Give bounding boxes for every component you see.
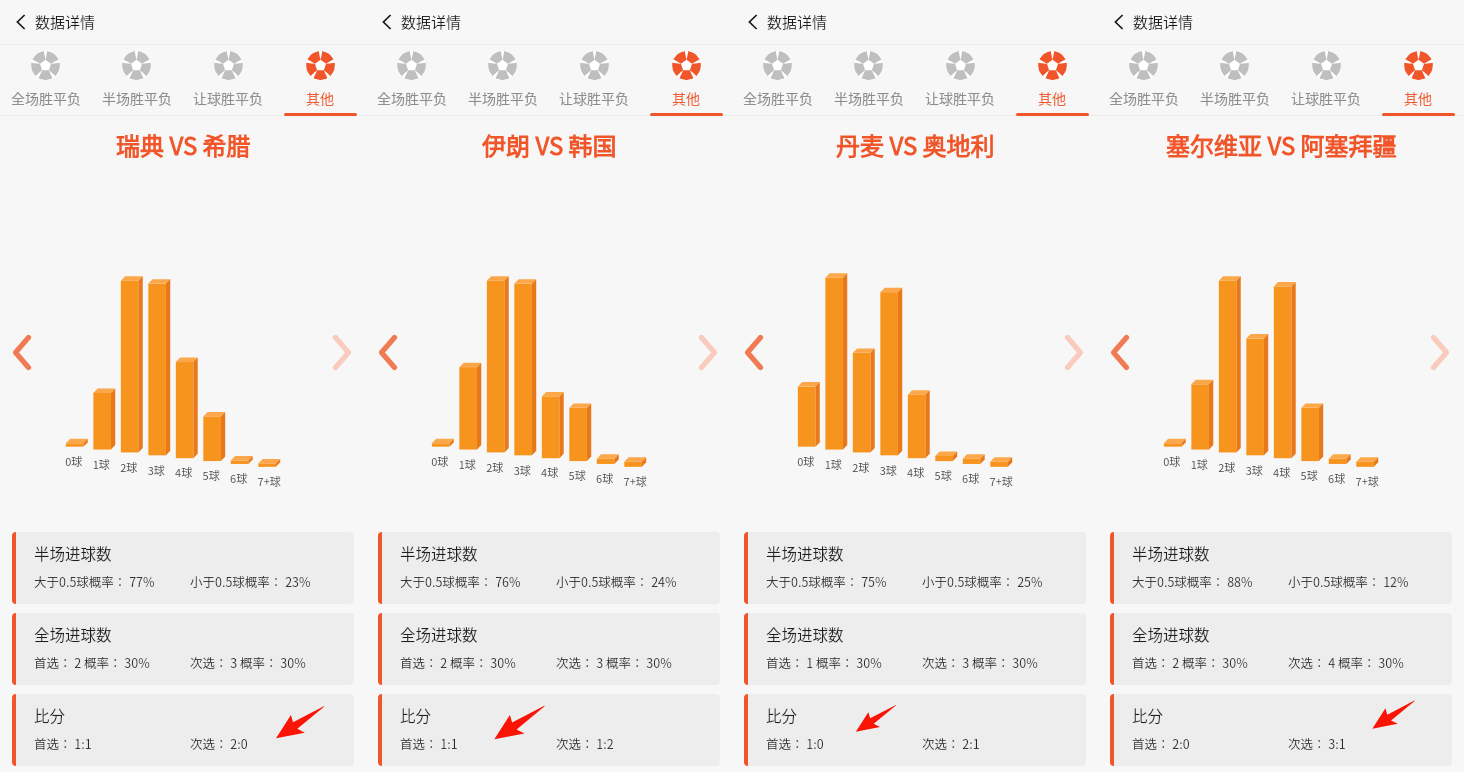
staticText: 次选： 3 概率： 30% (922, 653, 1038, 671)
button[interactable]: 半场胜平负 (823, 45, 914, 116)
button[interactable]: Next match (699, 335, 717, 370)
staticText: 半场胜平负 (1200, 88, 1270, 108)
button[interactable]: 比分 (12, 694, 354, 766)
staticText: 首选： 2 概率： 30% (34, 653, 150, 671)
staticText: 首选： 2:0 (1132, 734, 1190, 752)
button[interactable]: 半场进球数 (744, 532, 1086, 604)
button[interactable]: 全场进球数 (378, 613, 720, 685)
button[interactable]: Back (732, 0, 1098, 44)
button[interactable]: 全场进球数 (12, 613, 354, 685)
staticText: 比分 (400, 704, 432, 726)
staticText: 全场胜平负 (11, 88, 81, 108)
staticText: 比分 (1132, 704, 1164, 726)
button[interactable]: 全场进球数 (1110, 613, 1452, 685)
staticText: 全场进球数 (766, 623, 844, 645)
staticText: 全场胜平负 (377, 88, 447, 108)
button[interactable]: Previous match (1111, 335, 1129, 370)
staticText: 次选： 2:1 (922, 734, 980, 752)
staticText: 其他 (306, 88, 334, 108)
button[interactable]: 半场进球数 (1110, 532, 1452, 604)
staticText: 比分 (766, 704, 798, 726)
staticText: 丹麦 VS 奥地利 (836, 127, 995, 162)
button[interactable]: Previous match (379, 335, 397, 370)
button[interactable]: Next match (1065, 335, 1083, 370)
staticText: 大于0.5球概率： 75% (766, 572, 887, 590)
staticText: 首选： 1 概率： 30% (766, 653, 882, 671)
staticText: 让球胜平负 (925, 88, 995, 108)
staticText: 让球胜平负 (193, 88, 263, 108)
button[interactable]: 比分 (1110, 694, 1452, 766)
button[interactable]: Next match (1431, 335, 1449, 370)
button[interactable]: 让球胜平负 (914, 45, 1006, 116)
button[interactable]: Previous match (13, 335, 31, 370)
staticText: 数据详情 (1133, 11, 1194, 33)
button[interactable]: 其他 (1372, 45, 1464, 116)
button[interactable]: 让球胜平负 (182, 45, 274, 116)
staticText: 次选： 3:1 (1288, 734, 1346, 752)
staticText: 全场胜平负 (743, 88, 813, 108)
button[interactable]: 全场胜平负 (732, 45, 823, 116)
button[interactable]: 比分 (378, 694, 720, 766)
button[interactable]: 让球胜平负 (548, 45, 640, 116)
other: Back (1115, 15, 1123, 29)
button[interactable]: 全场进球数 (744, 613, 1086, 685)
other: Back (749, 15, 757, 29)
button[interactable]: Previous match (745, 335, 763, 370)
button[interactable]: 半场胜平负 (1189, 45, 1280, 116)
button[interactable]: Back (0, 0, 366, 44)
button[interactable]: 让球胜平负 (1280, 45, 1372, 116)
button[interactable]: Back (1098, 0, 1464, 44)
staticText: 首选： 2 概率： 30% (1132, 653, 1248, 671)
button[interactable]: 比分 (744, 694, 1086, 766)
staticText: 数据详情 (401, 11, 462, 33)
button[interactable]: 全场胜平负 (0, 45, 91, 116)
staticText: 首选： 1:1 (400, 734, 458, 752)
staticText: 其他 (1404, 88, 1432, 108)
staticText: 大于0.5球概率： 88% (1132, 572, 1253, 590)
staticText: 小于0.5球概率： 25% (922, 572, 1043, 590)
staticText: 次选： 4 概率： 30% (1288, 653, 1404, 671)
staticText: 次选： 3 概率： 30% (556, 653, 672, 671)
staticText: 小于0.5球概率： 12% (1288, 572, 1409, 590)
staticText: 次选： 1:2 (556, 734, 614, 752)
staticText: 首选： 1:0 (766, 734, 824, 752)
staticText: 瑞典 VS 希腊 (116, 127, 251, 162)
button[interactable]: 其他 (640, 45, 732, 116)
staticText: 半场进球数 (766, 542, 844, 564)
staticText: 半场进球数 (34, 542, 112, 564)
staticText: 其他 (1038, 88, 1066, 108)
staticText: 小于0.5球概率： 24% (556, 572, 677, 590)
staticText: 伊朗 VS 韩国 (482, 127, 617, 162)
staticText: 半场胜平负 (102, 88, 172, 108)
staticText: 全场胜平负 (1109, 88, 1179, 108)
staticText: 半场胜平负 (468, 88, 538, 108)
staticText: 大于0.5球概率： 77% (34, 572, 155, 590)
other: Back (383, 15, 391, 29)
staticText: 让球胜平负 (1291, 88, 1361, 108)
staticText: 数据详情 (767, 11, 828, 33)
staticText: 半场胜平负 (834, 88, 904, 108)
staticText: 比分 (34, 704, 66, 726)
staticText: 次选： 2:0 (190, 734, 248, 752)
button[interactable]: 半场进球数 (378, 532, 720, 604)
staticText: 半场进球数 (1132, 542, 1210, 564)
staticText: 让球胜平负 (559, 88, 629, 108)
button[interactable]: 半场胜平负 (457, 45, 548, 116)
button[interactable]: 半场进球数 (12, 532, 354, 604)
staticText: 首选： 1:1 (34, 734, 92, 752)
button[interactable]: 全场胜平负 (1098, 45, 1189, 116)
button[interactable]: Back (366, 0, 732, 44)
staticText: 数据详情 (35, 11, 96, 33)
button[interactable]: 其他 (274, 45, 366, 116)
staticText: 全场进球数 (1132, 623, 1210, 645)
button[interactable]: Next match (333, 335, 351, 370)
staticText: 大于0.5球概率： 76% (400, 572, 521, 590)
staticText: 其他 (672, 88, 700, 108)
button[interactable]: 半场胜平负 (91, 45, 182, 116)
button[interactable]: 全场胜平负 (366, 45, 457, 116)
staticText: 首选： 2 概率： 30% (400, 653, 516, 671)
button[interactable]: 其他 (1006, 45, 1098, 116)
other: Back (17, 15, 25, 29)
staticText: 次选： 3 概率： 30% (190, 653, 306, 671)
staticText: 全场进球数 (34, 623, 112, 645)
